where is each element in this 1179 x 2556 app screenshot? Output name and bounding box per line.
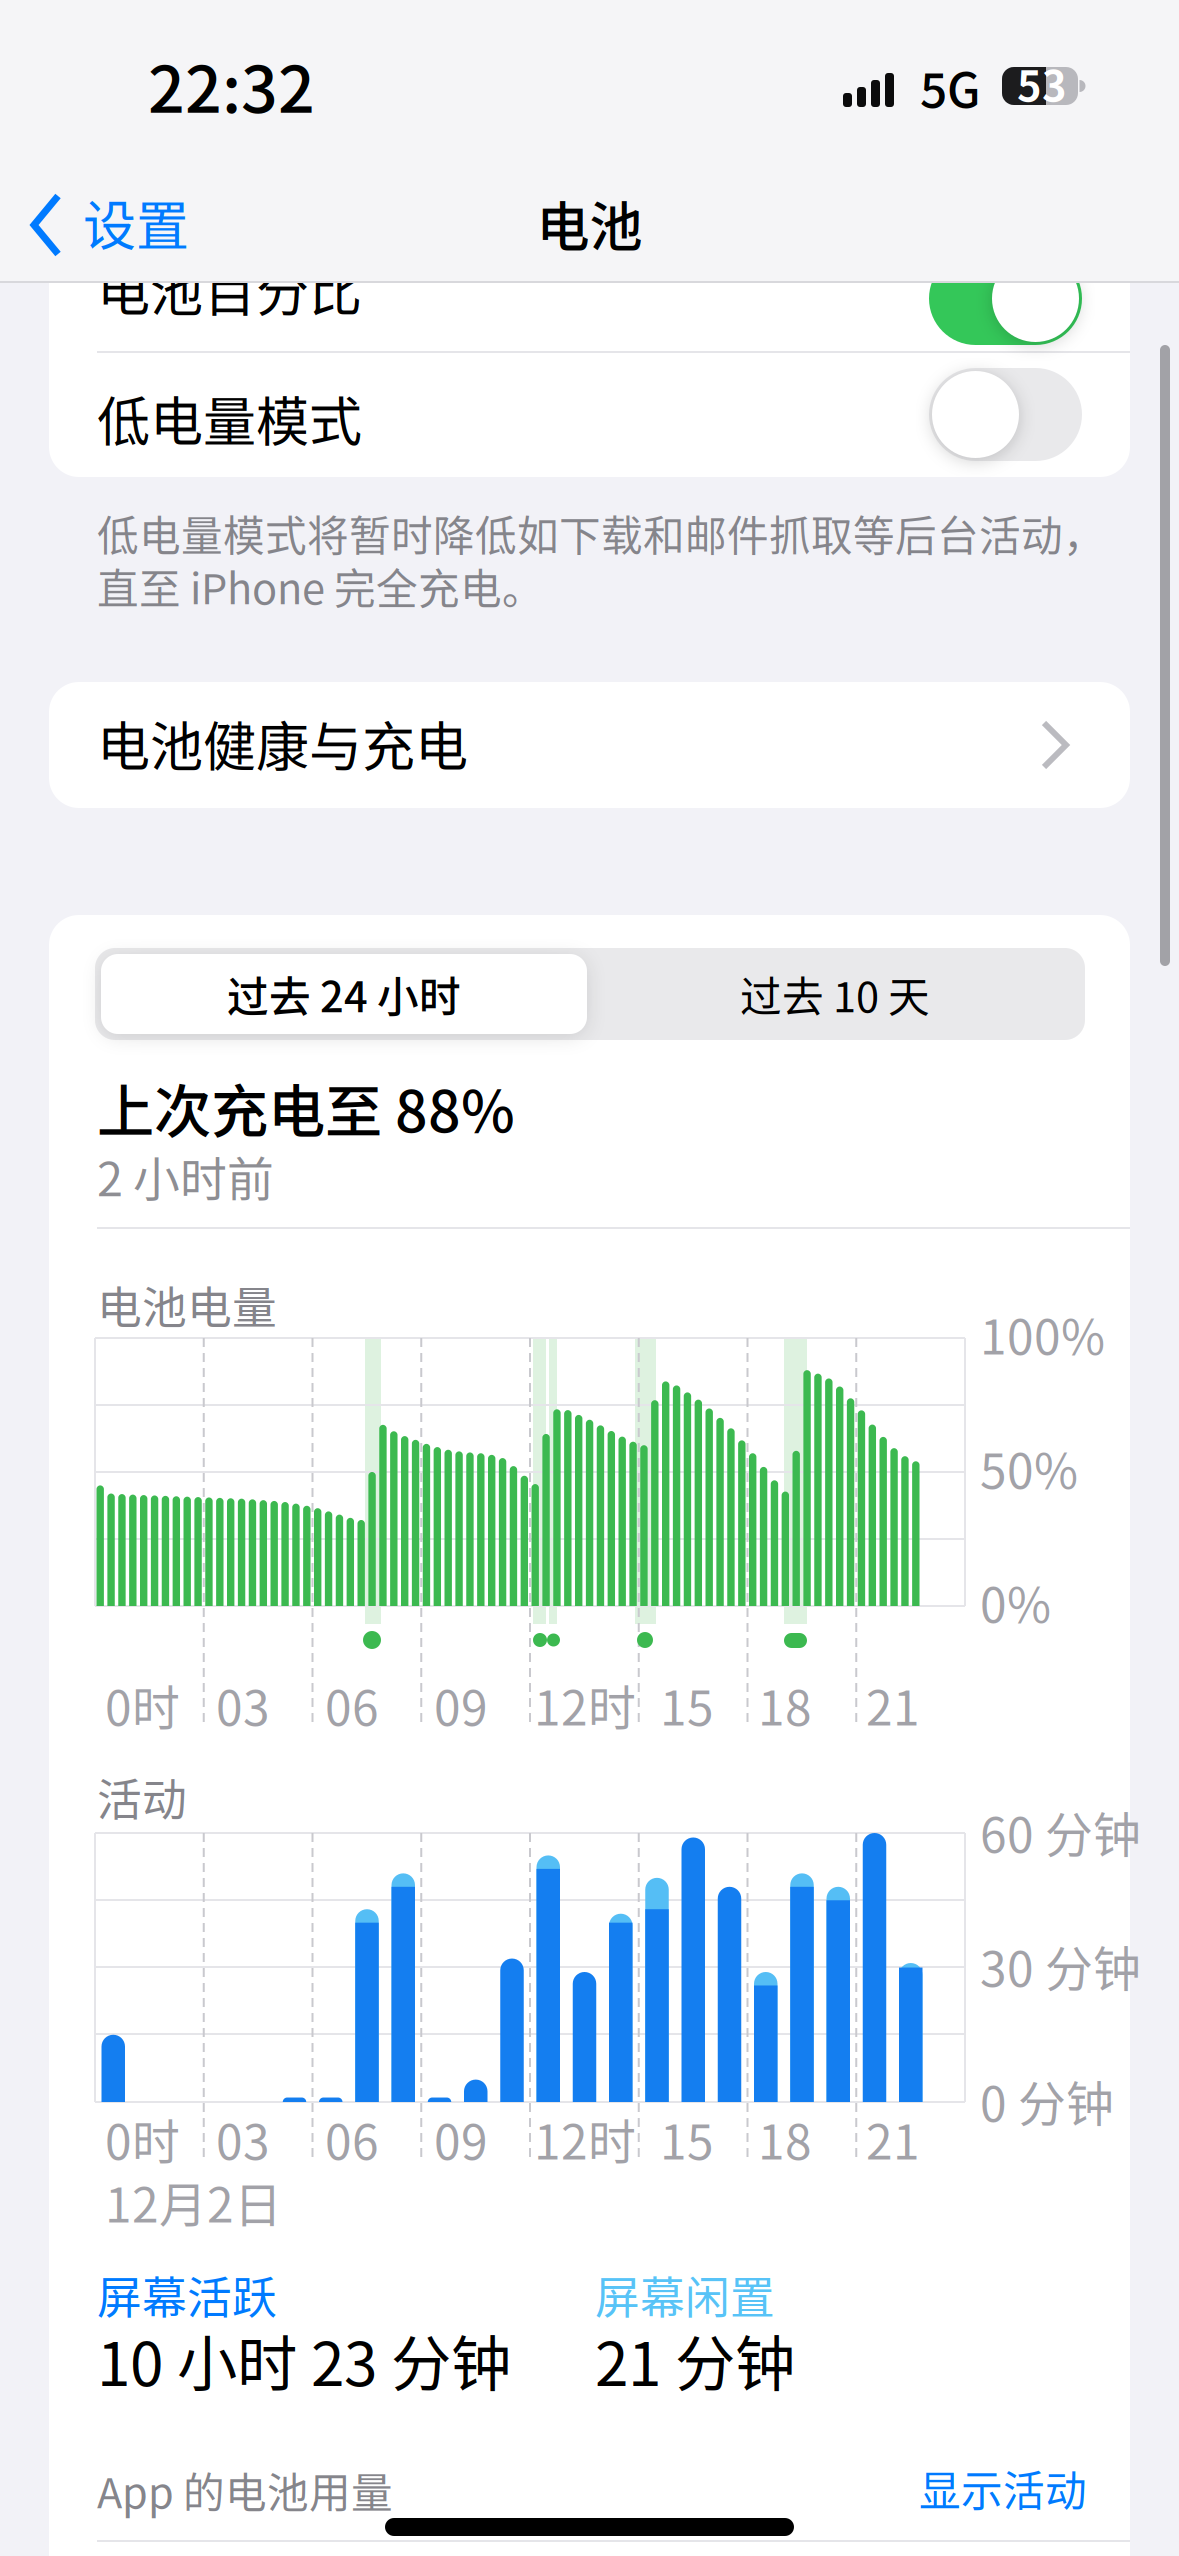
staticText: 设置 <box>83 184 189 261</box>
staticText: 0时 <box>105 2104 180 2173</box>
staticText: 15 <box>660 2104 714 2173</box>
staticText: 0时 <box>105 1670 180 1739</box>
staticText: 12时 <box>534 1670 636 1739</box>
staticText: 电池电量 <box>97 1272 277 1337</box>
staticText: 21 <box>866 2104 920 2173</box>
staticText: 09 <box>434 2104 488 2173</box>
staticText: 09 <box>434 1670 488 1739</box>
staticText: 低电量模式将暂时降低如下载和邮件抓取等后台活动， <box>97 503 1105 563</box>
staticText: 电池 <box>536 185 642 262</box>
staticText: 21 分钟 <box>595 2316 795 2403</box>
staticText: 2 小时前 <box>97 1142 274 1210</box>
staticText: 活动 <box>97 1764 187 1829</box>
staticText: 过去 10 天 <box>740 964 930 1024</box>
staticText: 03 <box>216 1670 270 1739</box>
staticText: 0% <box>980 1567 1051 1636</box>
staticText: 上次充电至 88% <box>97 1066 515 1149</box>
staticText: 100% <box>980 1299 1105 1368</box>
staticText: 12时 <box>534 2104 636 2173</box>
staticText: 50% <box>980 1433 1078 1502</box>
staticText: 06 <box>325 1670 379 1739</box>
button[interactable]: 返回设置 <box>22 180 252 270</box>
staticText: 显示活动 <box>919 2458 1087 2518</box>
button[interactable]: 过去 24 小时 <box>101 954 587 1034</box>
button[interactable]: 电池健康与充电 <box>49 682 1130 808</box>
staticText: 低电量模式 <box>97 380 362 457</box>
staticText: 12月2日 <box>105 2167 282 2236</box>
staticText: 0 分钟 <box>980 2066 1114 2135</box>
staticText: 06 <box>325 2104 379 2173</box>
staticText: 21 <box>866 1670 920 1739</box>
button[interactable]: 显示活动 <box>919 2458 1087 2518</box>
staticText: 30 分钟 <box>980 1931 1141 2000</box>
staticText: 03 <box>216 2104 270 2173</box>
staticText: 过去 24 小时 <box>227 964 461 1024</box>
staticText: 53 <box>1017 53 1067 113</box>
button[interactable]: 低电量模式 <box>929 368 1082 461</box>
staticText: 15 <box>660 1670 714 1739</box>
staticText: 10 小时 23 分钟 <box>97 2316 511 2403</box>
staticText: 直至 iPhone 完全充电。 <box>97 556 544 616</box>
button[interactable]: 过去 10 天 <box>595 954 1075 1034</box>
staticText: 屏幕活跃 <box>97 2262 277 2327</box>
staticText: 电池百分比 <box>97 250 362 327</box>
staticText: 电池健康与充电 <box>97 705 468 782</box>
staticText: 60 分钟 <box>980 1797 1141 1866</box>
staticText: 屏幕闲置 <box>595 2262 775 2327</box>
button[interactable]: 电池百分比 <box>929 252 1082 345</box>
staticText: 18 <box>758 1670 812 1739</box>
staticText: 18 <box>758 2104 812 2173</box>
staticText: App 的电池用量 <box>97 2460 393 2520</box>
staticText: 22:32 <box>148 38 315 131</box>
staticText: 5G <box>920 52 981 121</box>
